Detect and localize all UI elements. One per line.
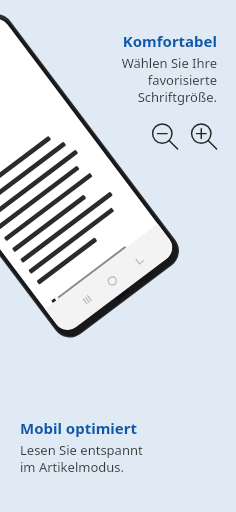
button[interactable]: Decrease font size <box>148 120 182 154</box>
staticText: Lesen Sie entspannt im Artikelmodus. <box>20 441 143 476</box>
staticText: Mobil optimiert <box>20 418 137 438</box>
staticText: Wählen Sie Ihre favorisierte Schriftgröß… <box>105 54 217 106</box>
button[interactable]: Increase font size <box>187 120 221 154</box>
staticText: Komfortabel <box>122 31 217 51</box>
